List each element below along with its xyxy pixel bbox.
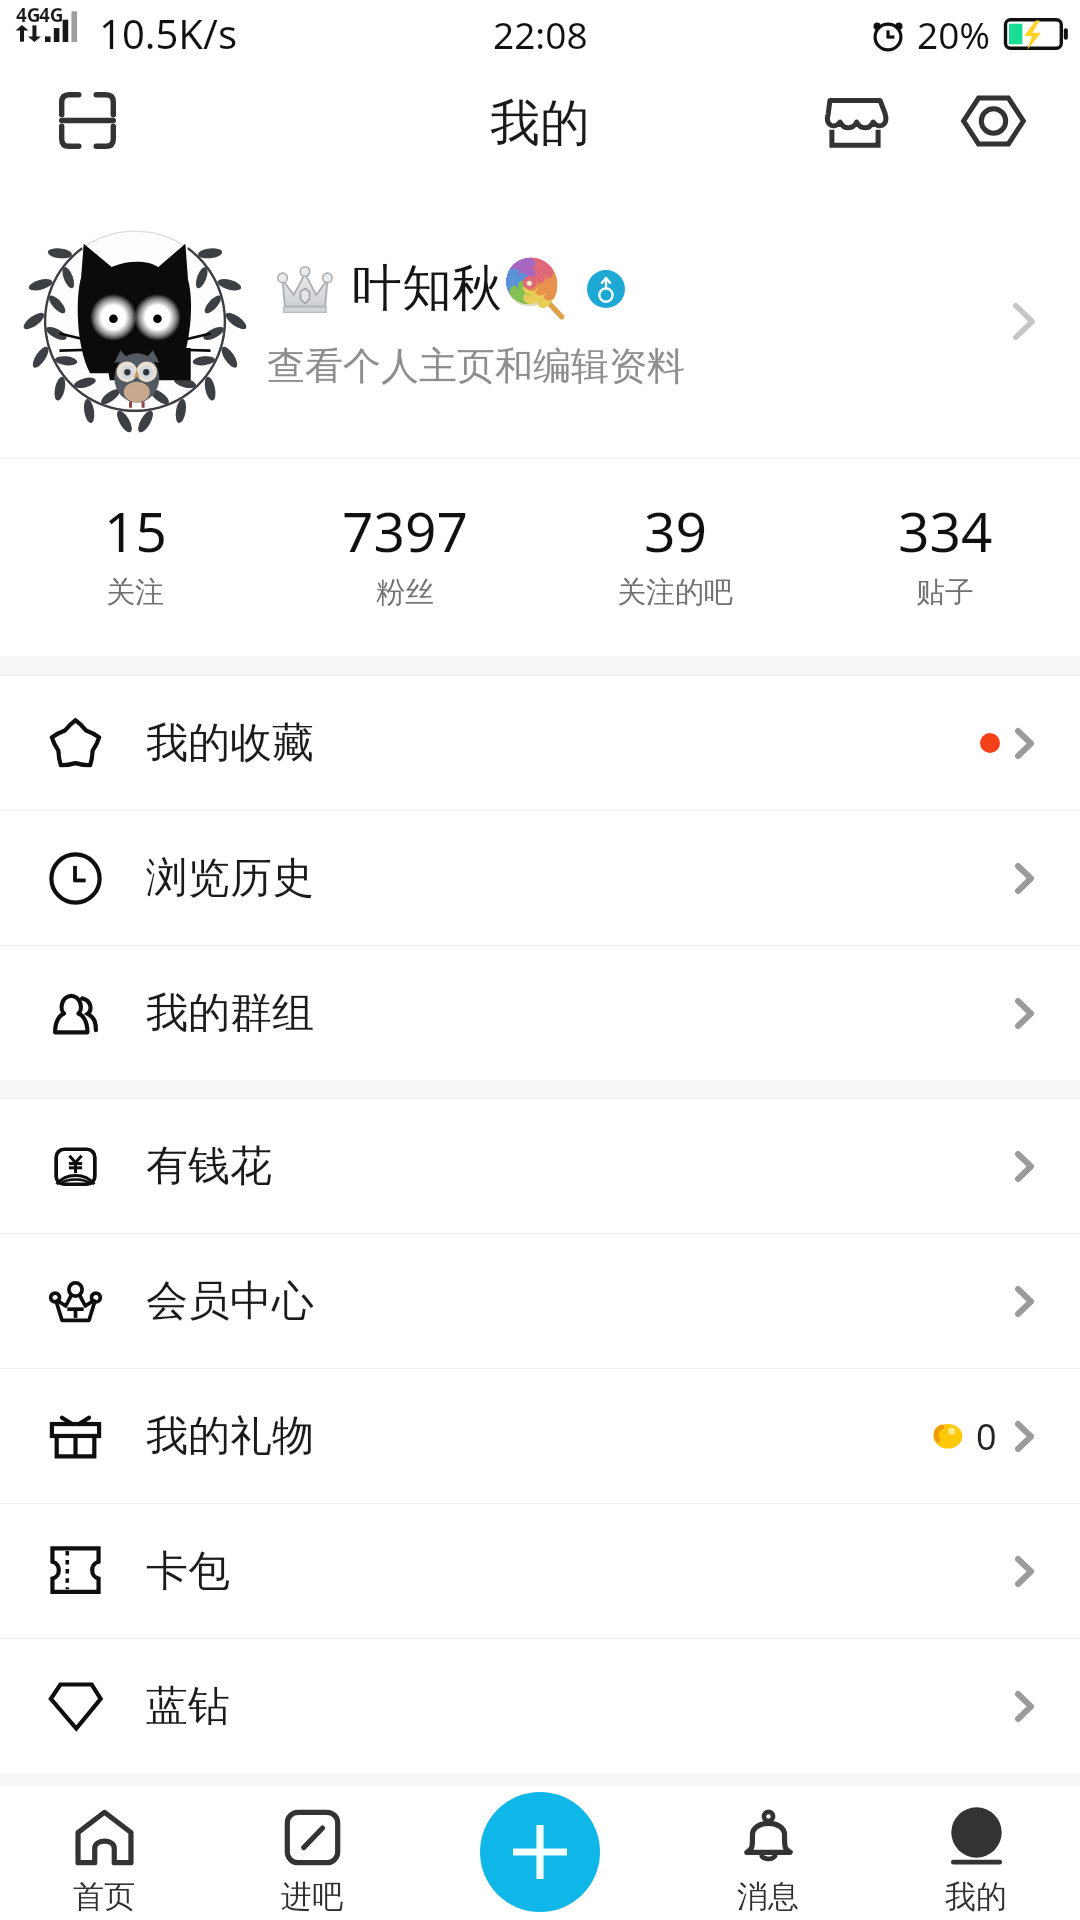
staticText: 关注的吧 <box>617 574 733 611</box>
button[interactable]: Scan QR code <box>37 70 137 170</box>
button[interactable]: 蓝钻 <box>0 1639 1080 1773</box>
button[interactable]: 浏览历史 <box>0 811 1080 945</box>
staticText: 会员中心 <box>146 1275 314 1328</box>
button[interactable]: 我的礼物 <box>0 1369 1080 1503</box>
button[interactable]: 首页 <box>0 1786 208 1920</box>
staticText: 叶知秋 <box>352 257 502 320</box>
button[interactable]: Create post <box>480 1792 600 1912</box>
staticText: 消息 <box>737 1877 799 1916</box>
staticText: 22:08 <box>493 9 588 59</box>
staticText: 进吧 <box>281 1877 343 1916</box>
staticText: 39 <box>644 493 707 568</box>
staticText: 0 <box>976 1412 997 1461</box>
button[interactable]: Shop <box>805 71 905 171</box>
button[interactable]: 我的群组 <box>0 946 1080 1080</box>
button[interactable]: 叶知秋 <box>0 184 1080 458</box>
button[interactable]: 卡包 <box>0 1504 1080 1638</box>
staticText: 7397 <box>342 493 468 568</box>
staticText: 我的 <box>490 92 590 155</box>
staticText: 20% <box>917 9 991 59</box>
staticText: 4G <box>16 2 41 28</box>
button[interactable]: 7397 <box>270 459 540 577</box>
staticText: 我的礼物 <box>146 1410 314 1463</box>
button[interactable]: 会员中心 <box>0 1234 1080 1368</box>
staticText: 有钱花 <box>146 1140 272 1193</box>
staticText: 关注 <box>106 574 164 611</box>
staticText: 10.5K/s <box>99 6 238 60</box>
staticText: 我的 <box>945 1877 1007 1916</box>
staticText: 浏览历史 <box>146 852 314 905</box>
button[interactable]: 我的 <box>872 1786 1080 1920</box>
staticText: 粉丝 <box>376 574 434 611</box>
button[interactable]: 我的收藏 <box>0 676 1080 810</box>
staticText: 334 <box>898 493 993 568</box>
button[interactable]: 进吧 <box>208 1786 416 1920</box>
button[interactable]: Settings <box>943 71 1043 171</box>
staticText: 贴子 <box>916 574 974 611</box>
staticText: 蓝钻 <box>146 1680 230 1733</box>
staticText: 4G <box>39 2 64 28</box>
staticText: 首页 <box>73 1877 135 1916</box>
button[interactable]: 有钱花 <box>0 1099 1080 1233</box>
staticText: 我的收藏 <box>146 717 314 770</box>
button[interactable]: 334 <box>810 459 1080 577</box>
staticText: 卡包 <box>146 1545 230 1598</box>
button[interactable]: 39 <box>540 459 810 577</box>
button[interactable]: 15 <box>0 459 270 577</box>
staticText: 15 <box>104 493 167 568</box>
staticText: 查看个人主页和编辑资料 <box>267 342 685 390</box>
button[interactable]: 消息 <box>664 1786 872 1920</box>
staticText: 我的群组 <box>146 987 314 1040</box>
